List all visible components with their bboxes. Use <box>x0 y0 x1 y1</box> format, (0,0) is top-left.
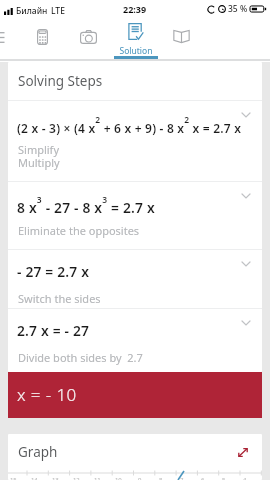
staticText: x = - 10 <box>17 383 77 406</box>
button[interactable]: (2 x - 3) × (4 x2 + 6 x + 9) - 8 x2 x = … <box>8 101 262 181</box>
staticText: 2.7 x = - 27 <box>17 321 90 340</box>
button[interactable]: x = - 10 <box>8 372 262 418</box>
staticText: -12 <box>71 476 80 480</box>
button[interactable]: 2.7 x = - 27 <box>8 309 262 372</box>
button[interactable]: Calculator <box>37 29 48 45</box>
staticText: -8 <box>157 476 163 480</box>
button[interactable]: Menu <box>0 26 14 50</box>
staticText: -14 <box>29 476 38 480</box>
staticText: Graph <box>18 443 58 461</box>
staticText: -10 <box>113 476 122 480</box>
staticText: -15 <box>8 476 17 480</box>
staticText: 35 % <box>228 3 248 15</box>
button[interactable]: Glossary <box>173 30 190 43</box>
staticText: Solving Steps <box>18 72 103 90</box>
button[interactable]: Graph <box>8 434 262 470</box>
staticText: (2 x - 3) × (4 x2 + 6 x + 9) - 8 x2 x = … <box>17 114 242 137</box>
staticText: Switch the sides <box>18 291 101 306</box>
staticText: Divide both sides by 2.7 <box>18 350 143 365</box>
staticText: -5 <box>220 476 226 480</box>
staticText: Solution <box>114 45 158 57</box>
staticText: Eliminate the opposites <box>18 223 140 238</box>
staticText: Билайн <box>16 5 48 17</box>
staticText: 8 x3 - 27 - 8 x3 = 2.7 x <box>17 194 155 217</box>
staticText: Multiply <box>18 155 60 170</box>
staticText: -7 <box>178 476 184 480</box>
staticText: - 27 = 2.7 x <box>17 262 90 281</box>
button[interactable]: Solving Steps <box>8 62 262 100</box>
button[interactable]: Solution <box>113 18 159 61</box>
staticText: Simplify <box>18 142 59 157</box>
staticText: LTE <box>51 5 65 17</box>
button[interactable]: Camera <box>80 30 97 44</box>
staticText: 22:39 <box>123 3 147 15</box>
button[interactable]: 8 x3 - 27 - 8 x3 = 2.7 x <box>8 182 262 249</box>
staticText: -11 <box>92 476 101 480</box>
button[interactable]: - 27 = 2.7 x <box>8 250 262 310</box>
staticText: -9 <box>136 476 142 480</box>
staticText: -13 <box>50 476 59 480</box>
button[interactable]: Expand graph <box>236 446 250 459</box>
staticText: -4 <box>241 476 247 480</box>
staticText: -6 <box>199 476 205 480</box>
